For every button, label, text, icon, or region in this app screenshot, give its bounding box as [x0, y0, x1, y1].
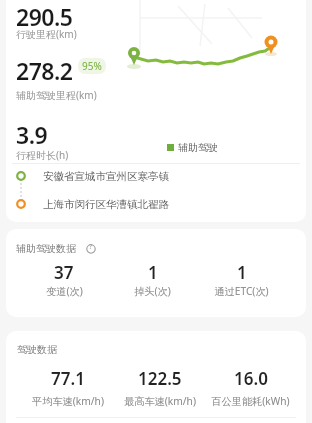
- staticText: 掉头(次): [134, 284, 171, 298]
- staticText: 1: [237, 261, 247, 284]
- button[interactable]: 安徽省宣城市宣州区寒亭镇: [43, 170, 169, 183]
- staticText: 122.5: [138, 367, 182, 390]
- staticText: 安徽省宣城市宣州区寒亭镇: [43, 170, 169, 183]
- button[interactable]: 16.0: [205, 367, 296, 408]
- button[interactable]: 1: [197, 261, 286, 298]
- staticText: 通过ETC(次): [214, 284, 269, 298]
- staticText: 辅助驾驶里程(km): [16, 88, 97, 102]
- staticText: 3.9: [16, 119, 48, 150]
- button[interactable]: 1: [108, 261, 197, 298]
- staticText: 77.1: [51, 367, 85, 390]
- button[interactable]: 77.1: [22, 367, 114, 408]
- staticText: 驾驶数据: [17, 343, 57, 356]
- staticText: 95%: [82, 59, 102, 73]
- staticText: 辅助驾驶数据: [16, 242, 76, 255]
- staticText: 1: [148, 261, 158, 284]
- staticText: 行程时长(h): [16, 148, 69, 162]
- staticText: 上海市闵行区华漕镇北翟路: [43, 198, 169, 211]
- staticText: 百公里能耗(kWh): [211, 394, 290, 408]
- staticText: ?: [89, 242, 93, 252]
- staticText: 行驶里程(km): [16, 27, 77, 41]
- button[interactable]: 37: [20, 261, 108, 298]
- button[interactable]: 122.5: [114, 367, 205, 408]
- staticText: 290.5: [16, 1, 73, 32]
- button[interactable]: 上海市闵行区华漕镇北翟路: [43, 198, 169, 211]
- staticText: 最高车速(km/h): [124, 394, 196, 408]
- staticText: 平均车速(km/h): [32, 394, 104, 408]
- staticText: 变道(次): [46, 284, 83, 298]
- staticText: 16.0: [234, 367, 268, 390]
- staticText: 278.2: [16, 55, 73, 86]
- staticText: 辅助驾驶: [178, 141, 218, 154]
- staticText: 37: [54, 261, 74, 284]
